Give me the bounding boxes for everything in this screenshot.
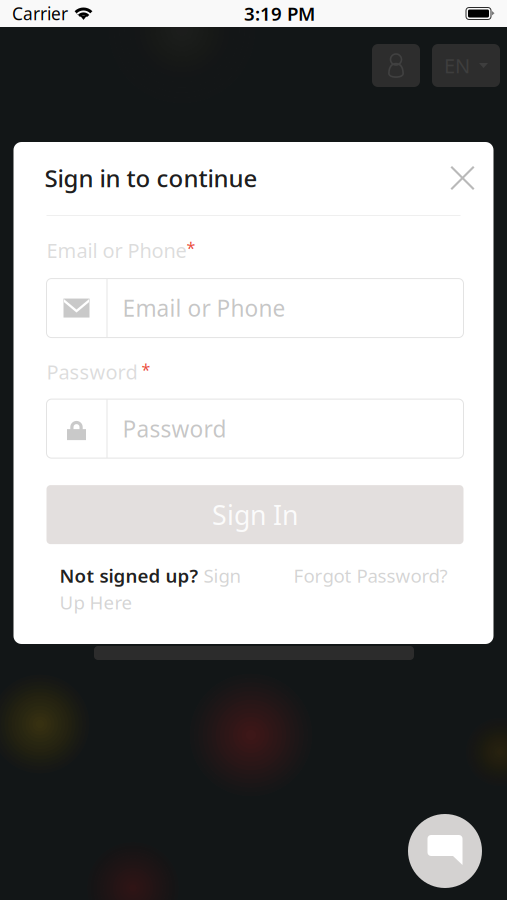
staticText: Up Here xyxy=(59,590,132,615)
staticText: Not signed up? xyxy=(59,563,198,588)
staticText: * xyxy=(141,359,150,380)
staticText: Password xyxy=(46,359,137,385)
button[interactable]: Chat xyxy=(408,814,482,888)
staticText: Forgot Password? xyxy=(293,563,447,588)
staticText: 3:19 PM xyxy=(244,1,315,26)
staticText: * xyxy=(186,237,195,258)
button[interactable]: Close xyxy=(445,161,479,195)
button[interactable]: Forgot Password? xyxy=(293,563,447,588)
staticText: Password xyxy=(122,414,226,444)
button[interactable]: Account xyxy=(372,44,420,87)
staticText: Email or Phone xyxy=(46,237,186,264)
button[interactable]: Sign In xyxy=(46,485,463,544)
staticText: Sign In xyxy=(212,497,298,532)
staticText: Sign in to continue xyxy=(44,162,257,194)
staticText: Email or Phone xyxy=(122,293,285,323)
staticText: Sign xyxy=(203,563,241,588)
button[interactable]: Not signed up? xyxy=(59,563,255,615)
staticText: Carrier xyxy=(12,2,68,25)
staticText: EN xyxy=(444,52,470,79)
button[interactable]: EN xyxy=(432,44,500,87)
